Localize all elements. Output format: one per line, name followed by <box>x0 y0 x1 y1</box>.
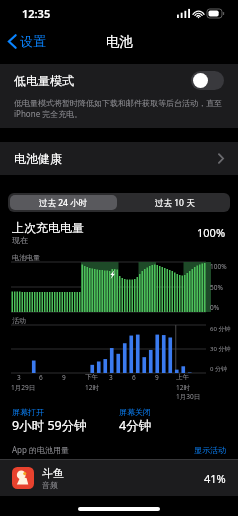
button[interactable]: 斗鱼 <box>0 460 238 496</box>
staticText: 上次充电电量 <box>12 220 84 235</box>
staticText: 3 <box>17 373 21 382</box>
staticText: 9 <box>62 373 66 382</box>
staticText: 屏幕关闭 <box>119 407 151 417</box>
staticText: 3 <box>109 373 113 382</box>
staticText: 过去 10 天 <box>155 197 195 209</box>
button[interactable]: 过去 10 天 <box>119 193 230 212</box>
staticText: 9小时 59分钟 <box>12 417 87 434</box>
staticText: 30 分钟 <box>210 345 231 353</box>
staticText: 0 分钟 <box>210 365 227 373</box>
staticText: 12时 <box>176 383 190 392</box>
staticText: 4分钟 <box>119 417 152 434</box>
staticText: 低电量模式 <box>14 73 191 88</box>
staticText: 100% <box>210 262 227 271</box>
staticText: 低电量模式将暂时降低如下载和邮件获取等后台活动，直至 iPhone 完全充电。 <box>14 97 222 119</box>
staticText: 斗鱼 <box>42 466 64 480</box>
button[interactable]: 低电量模式开关 <box>191 71 224 90</box>
staticText: 60 分钟 <box>210 325 231 333</box>
staticText: 下午 <box>85 373 98 381</box>
staticText: 41% <box>204 471 226 486</box>
staticText: App 的电池用量 <box>12 444 194 455</box>
staticText: 现在 <box>12 235 28 245</box>
staticText: 电池 <box>106 33 133 50</box>
staticText: 电池电量 <box>12 253 40 262</box>
staticText: 过去 24 小时 <box>39 197 88 209</box>
staticText: 0% <box>210 303 220 312</box>
staticText: 上午 <box>176 373 189 381</box>
staticText: 设置 <box>20 33 46 49</box>
button[interactable]: 低电量模式 <box>0 64 238 96</box>
staticText: 电池健康 <box>14 151 218 166</box>
staticText: 1月29日 <box>11 383 36 392</box>
staticText: 50% <box>210 283 223 292</box>
button[interactable]: 电池健康 <box>0 142 238 175</box>
staticText: 活动 <box>12 316 26 325</box>
staticText: 显示活动 <box>194 445 226 455</box>
button[interactable]: 设置 <box>0 29 54 53</box>
button[interactable]: 显示活动 <box>194 445 226 455</box>
staticText: 音频 <box>42 480 58 490</box>
staticText: 9 <box>155 373 159 382</box>
staticText: 12:35 <box>22 6 51 21</box>
staticText: 12时 <box>85 383 99 392</box>
staticText: 1月30日 <box>176 392 201 401</box>
staticText: 6 <box>132 373 136 382</box>
staticText: 6 <box>39 373 43 382</box>
button[interactable]: 过去 24 小时 <box>10 195 117 210</box>
staticText: 屏幕打开 <box>12 407 44 417</box>
staticText: 100% <box>197 225 226 240</box>
